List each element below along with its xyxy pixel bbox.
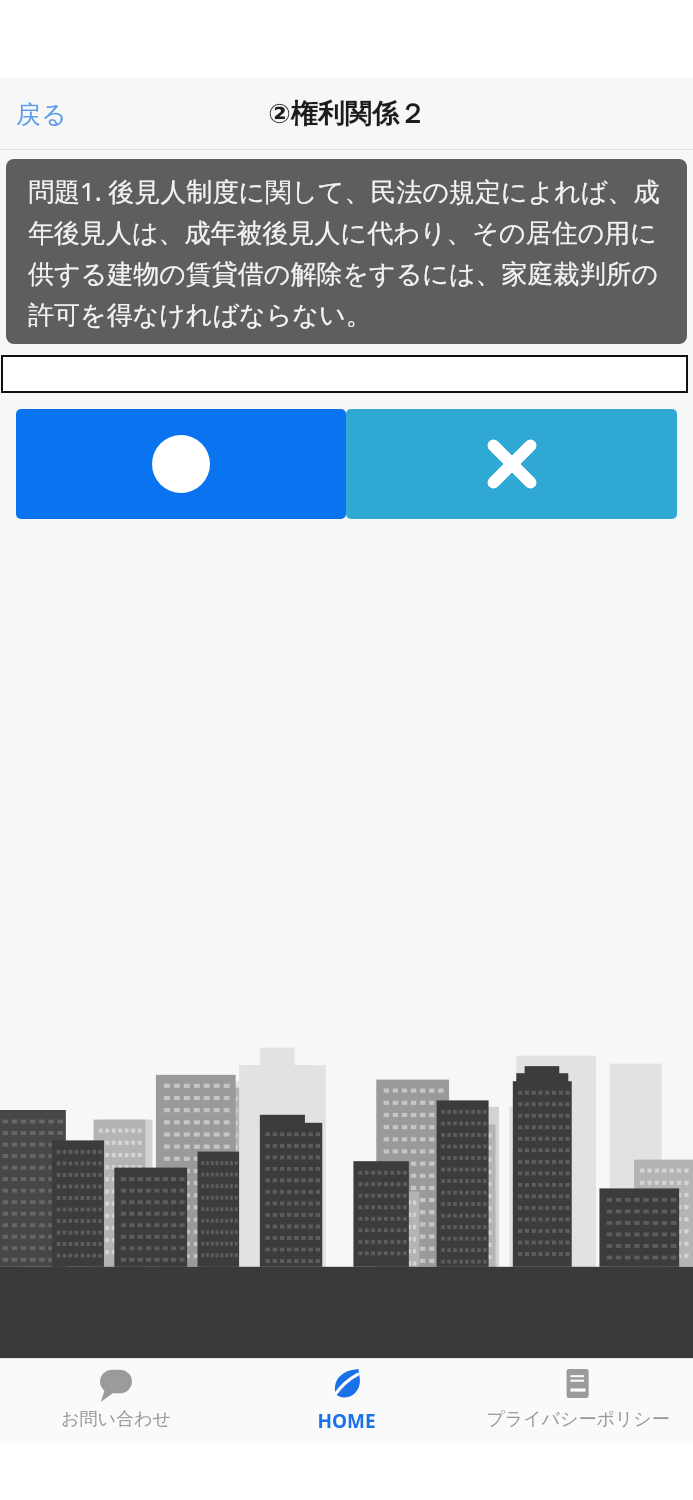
button[interactable]: 問題1. 後見人制度に関して、民法の規定によれば、成年後見人は、成年被後見人に代…: [6, 159, 687, 344]
button[interactable]: お問い合わせ: [0, 1358, 231, 1443]
button[interactable]: 戻る: [6, 91, 77, 138]
button[interactable]: × 誤り: [346, 409, 677, 519]
button[interactable]: ○ 正しい: [16, 409, 346, 519]
staticText: 戻る: [16, 99, 67, 130]
staticText: お問い合わせ: [61, 1408, 171, 1431]
staticText: 問題1. 後見人制度に関して、民法の規定によれば、成年後見人は、成年被後見人に代…: [28, 173, 665, 331]
button[interactable]: プライバシーポリシー: [462, 1358, 693, 1443]
staticText: HOME: [317, 1408, 376, 1434]
button[interactable]: HOME: [231, 1358, 462, 1443]
staticText: プライバシーポリシー: [486, 1408, 670, 1431]
button[interactable]: [1, 355, 688, 393]
staticText: ②権利関係２: [268, 97, 426, 131]
